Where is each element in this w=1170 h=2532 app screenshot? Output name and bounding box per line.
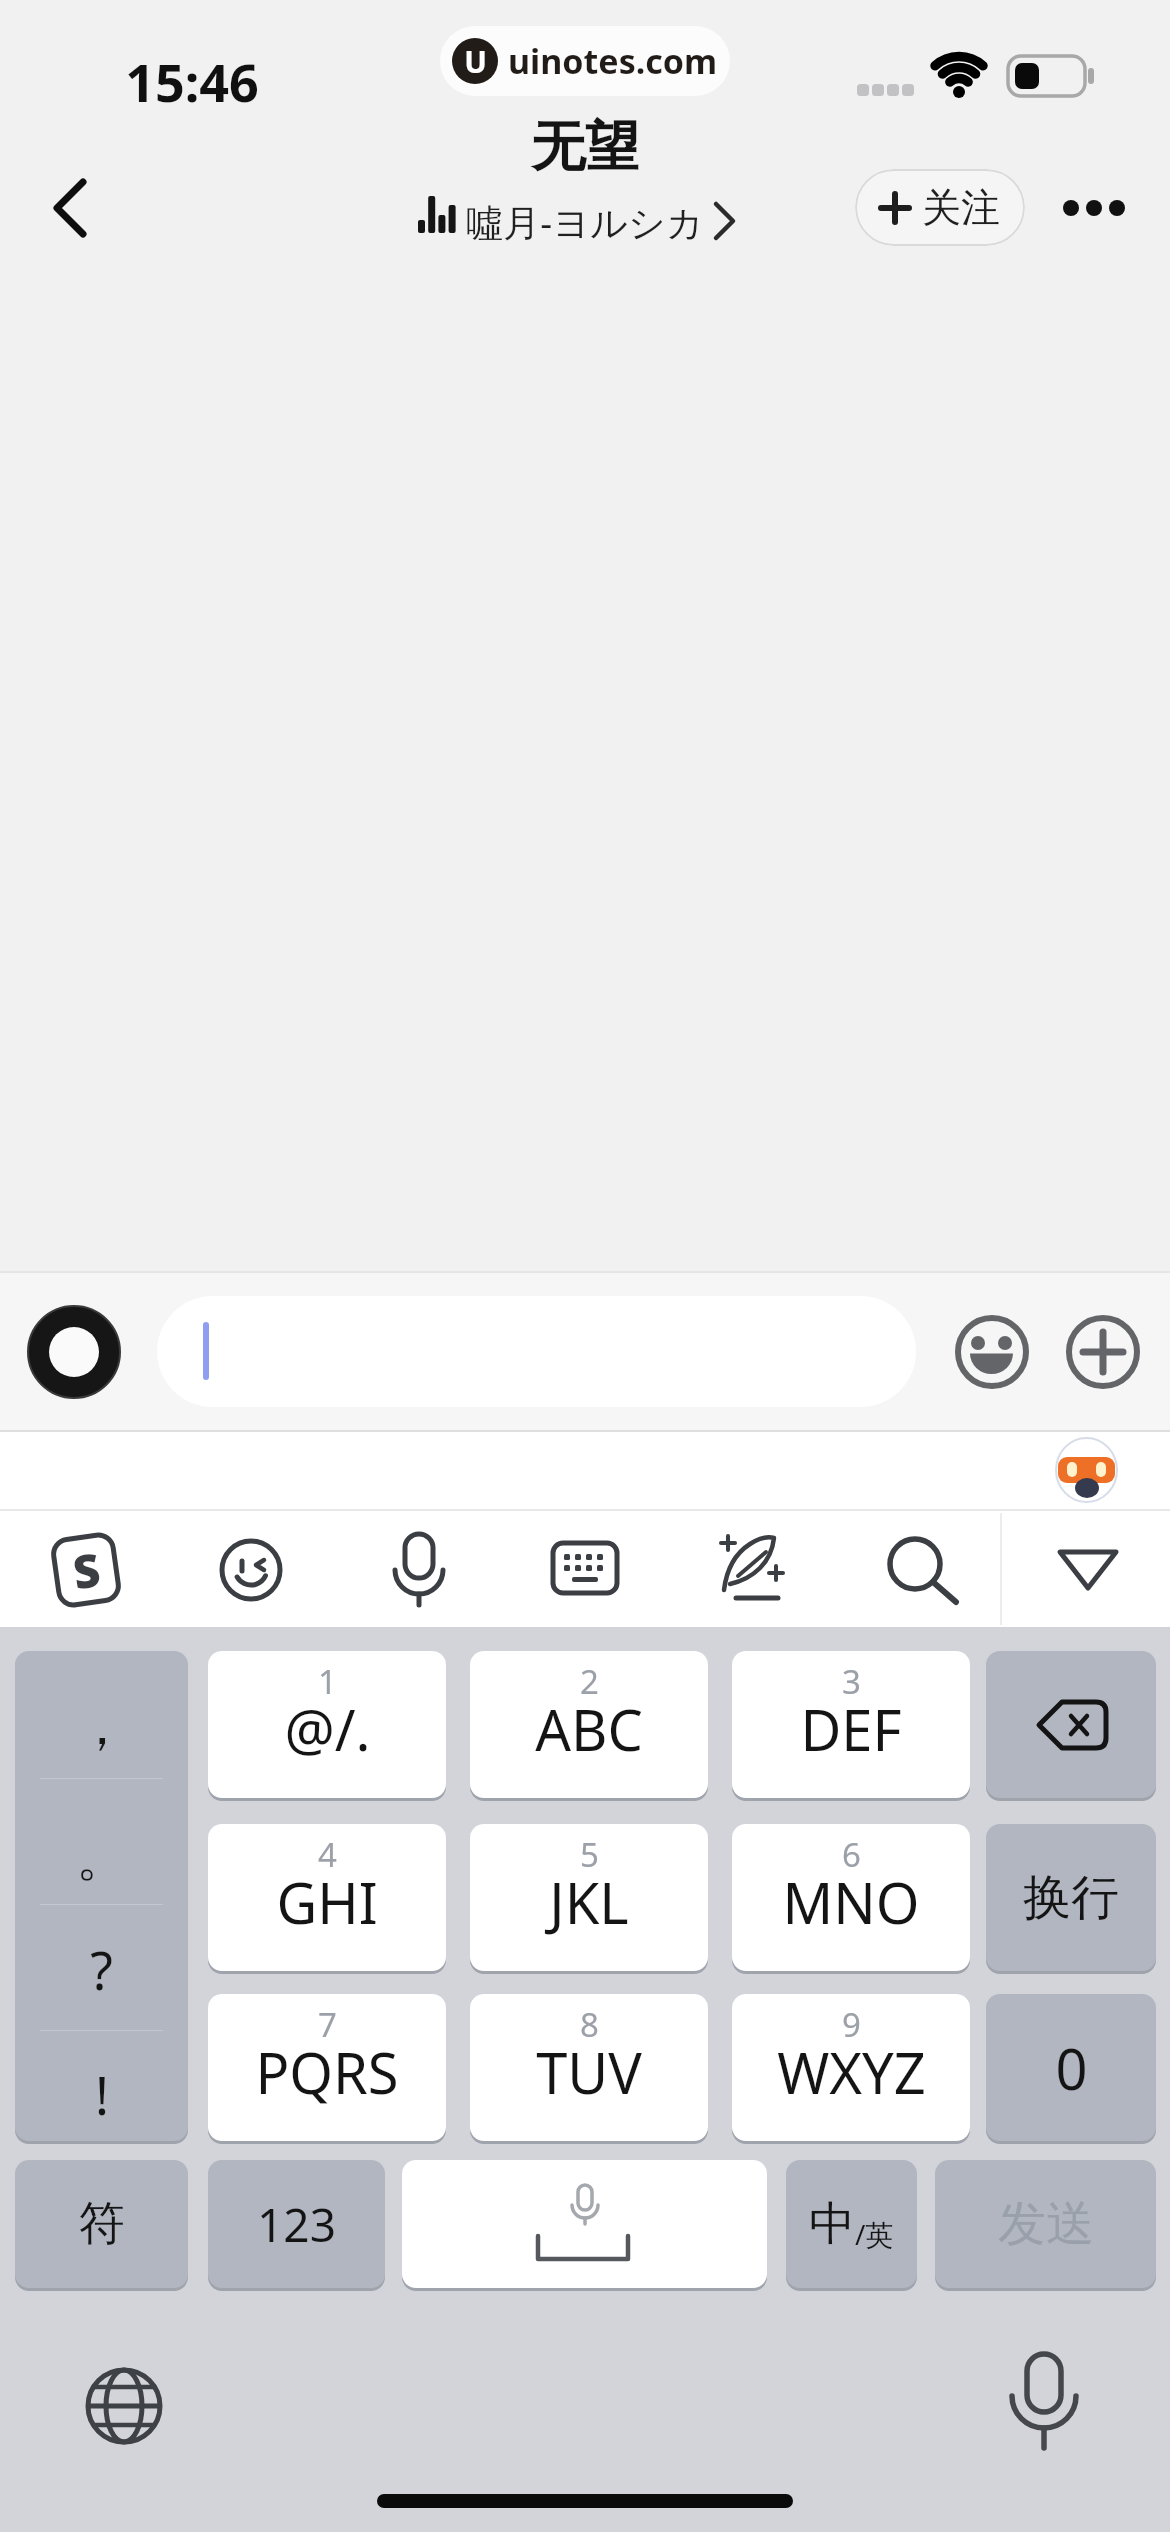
button[interactable]: 4 <box>208 1824 446 1971</box>
button[interactable] <box>884 1534 962 1606</box>
staticText: GHI <box>276 1864 378 1940</box>
button[interactable] <box>157 1296 916 1407</box>
staticText: PQRS <box>255 2034 399 2110</box>
staticText: 123 <box>257 2193 336 2256</box>
staticText: 。 <box>76 1825 128 1891</box>
button[interactable] <box>28 1306 120 1398</box>
button[interactable] <box>1050 1540 1126 1600</box>
button[interactable]: 关注 <box>855 169 1025 246</box>
button[interactable]: 9 <box>732 1994 970 2141</box>
staticText: 15:46 <box>125 46 259 108</box>
staticText: 关注 <box>922 183 1000 232</box>
button[interactable]: 3 <box>732 1651 970 1798</box>
staticText: 噓月-ヨルシカ <box>466 196 704 247</box>
button[interactable] <box>551 1540 619 1598</box>
button[interactable]: 发送 <box>935 2160 1156 2288</box>
staticText: ， <box>76 1694 128 1760</box>
staticText: uinotes.com <box>508 38 718 84</box>
button[interactable]: 噓月-ヨルシカ <box>410 190 755 252</box>
button[interactable] <box>954 1314 1030 1390</box>
button[interactable] <box>1008 2352 1080 2456</box>
button[interactable]: 中/英 <box>786 2160 917 2288</box>
button[interactable]: 符 <box>15 2160 188 2288</box>
staticText: U <box>464 41 487 82</box>
staticText: 8 <box>580 2002 599 2047</box>
staticText: DEF <box>800 1691 902 1767</box>
button[interactable] <box>716 1532 788 1608</box>
staticText: S <box>69 1537 104 1603</box>
button[interactable] <box>1050 180 1140 236</box>
button[interactable]: 123 <box>208 2160 385 2288</box>
button[interactable]: 2 <box>470 1651 708 1798</box>
button[interactable]: 换行 <box>986 1824 1156 1971</box>
staticText: 5 <box>580 1832 599 1877</box>
button[interactable] <box>402 2160 767 2288</box>
staticText: 0 <box>1055 2030 1088 2106</box>
button[interactable]: 5 <box>470 1824 708 1971</box>
staticText: 发送 <box>998 2194 1094 2254</box>
staticText: 符 <box>79 2195 125 2253</box>
staticText: 无望 <box>531 113 639 181</box>
staticText: 2 <box>580 1659 599 1704</box>
staticText: 7 <box>318 2002 337 2047</box>
staticText: MNO <box>782 1864 920 1940</box>
staticText: WXYZ <box>777 2034 926 2110</box>
button[interactable]: 0 <box>986 1994 1156 2141</box>
staticText: JKL <box>549 1864 629 1940</box>
staticText: 9 <box>842 2002 861 2047</box>
button[interactable] <box>986 1651 1156 1798</box>
staticText: ABC <box>535 1691 643 1767</box>
staticText: ? <box>90 1934 113 2005</box>
button[interactable]: S <box>41 1525 131 1615</box>
staticText: 中/英 <box>809 2195 894 2254</box>
button[interactable] <box>1065 1314 1141 1390</box>
button[interactable]: 8 <box>470 1994 708 2141</box>
button[interactable] <box>1054 1436 1120 1504</box>
button[interactable]: 6 <box>732 1824 970 1971</box>
staticText: 4 <box>318 1832 337 1877</box>
button[interactable]: 1 <box>208 1651 446 1798</box>
staticText: 换行 <box>1023 1868 1119 1928</box>
button[interactable]: ， <box>15 1651 188 2141</box>
staticText: TUV <box>536 2034 642 2110</box>
staticText: 6 <box>842 1832 861 1877</box>
button[interactable] <box>30 155 110 255</box>
staticText: 1 <box>318 1659 337 1704</box>
button[interactable]: 7 <box>208 1994 446 2141</box>
staticText: ! <box>95 2059 109 2130</box>
button[interactable] <box>218 1537 284 1603</box>
button[interactable] <box>84 2366 164 2446</box>
staticText: 3 <box>842 1659 861 1704</box>
button[interactable] <box>388 1532 450 1608</box>
staticText: @/. <box>284 1691 371 1767</box>
